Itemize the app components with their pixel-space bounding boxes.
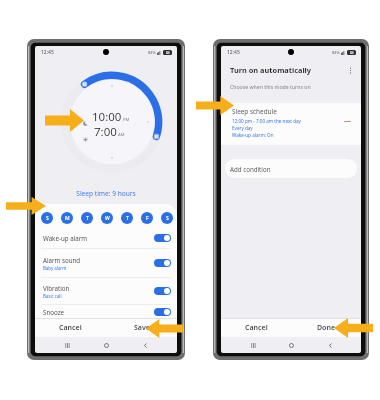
button[interactable]: T [121, 212, 133, 224]
staticText: Done [317, 323, 336, 333]
staticText: Wake-up alarm [43, 234, 88, 242]
button[interactable]: Vibration [35, 278, 177, 304]
button[interactable]: Home [99, 338, 113, 352]
button[interactable] [154, 287, 171, 295]
button[interactable]: Recents [60, 338, 74, 352]
button[interactable]: Back [138, 338, 152, 352]
staticText: 84 [350, 51, 354, 55]
button[interactable]: Back [323, 338, 337, 352]
staticText: Baby alarm [43, 265, 67, 271]
staticText: F [146, 215, 149, 222]
button[interactable]: Save [106, 319, 177, 337]
staticText: 12:45 [227, 49, 240, 56]
staticText: PM [123, 117, 130, 123]
staticText: Choose when this mode turns on [230, 83, 311, 90]
staticText: 12:45 [41, 49, 54, 56]
staticText: Sleep time: 9 hours [35, 189, 177, 198]
button[interactable]: More options [344, 64, 356, 76]
staticText: 84% [148, 50, 156, 55]
button[interactable]: Alarm sound [35, 249, 177, 277]
other: Pointer arrow [45, 109, 84, 132]
staticText: T [126, 215, 129, 222]
staticText: Save [134, 323, 150, 333]
button[interactable]: M [61, 212, 73, 224]
button[interactable]: S [161, 212, 173, 224]
button[interactable]: Sleep schedule [221, 103, 361, 145]
button[interactable]: W [101, 212, 113, 224]
other: Pointer arrow [334, 318, 373, 338]
staticText: Vibration [43, 284, 70, 292]
button[interactable]: Recents [246, 338, 260, 352]
staticText: 7:00 [94, 124, 117, 140]
button[interactable]: T [81, 212, 93, 224]
button[interactable]: Snooze [35, 305, 177, 318]
button[interactable] [154, 234, 171, 242]
staticText: AM [118, 132, 125, 138]
button[interactable]: Home [284, 338, 298, 352]
staticText: 10:00 [92, 109, 122, 125]
staticText: 84 [166, 51, 170, 55]
staticText: Turn on automatically [230, 65, 344, 75]
staticText: W [105, 215, 110, 222]
button[interactable]: Wake-up alarm [35, 227, 177, 248]
staticText: 84% [332, 50, 340, 55]
button[interactable]: Cancel [35, 319, 106, 337]
staticText: T [86, 215, 89, 222]
staticText: Basic call [43, 293, 62, 299]
button[interactable]: Done [291, 319, 361, 337]
staticText: Sleep schedule [232, 107, 277, 116]
button[interactable]: Cancel [221, 319, 291, 337]
other: Pointer arrow [196, 96, 234, 115]
staticText: Every day [232, 125, 253, 131]
staticText: S [166, 215, 169, 222]
other: Pointer arrow [6, 197, 46, 215]
button[interactable] [154, 259, 171, 267]
staticText: S [46, 215, 49, 222]
button[interactable] [154, 308, 171, 316]
staticText: Snooze [43, 308, 65, 316]
button[interactable]: F [141, 212, 153, 224]
button[interactable]: Add condition [225, 159, 357, 178]
other: Pointer arrow [146, 319, 183, 338]
staticText: M [65, 215, 70, 222]
staticText: Alarm sound [43, 256, 81, 264]
staticText: 12:00 pm - 7:00 am the next day [232, 118, 301, 124]
staticText: Wake-up alarm: On [232, 132, 274, 138]
staticText: Cancel [59, 323, 82, 333]
staticText: Cancel [245, 323, 268, 333]
button[interactable]: S [41, 212, 53, 224]
staticText: Add condition [230, 165, 271, 173]
